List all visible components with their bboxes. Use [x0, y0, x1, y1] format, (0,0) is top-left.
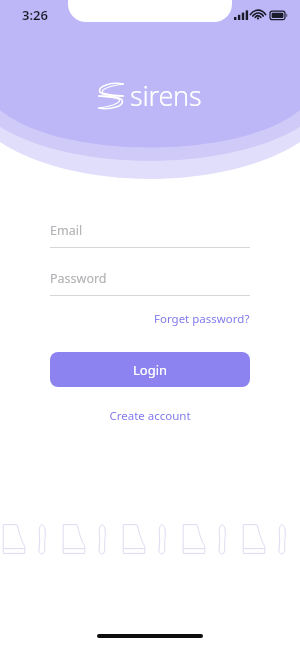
- button[interactable]: Create account: [103, 405, 197, 427]
- button[interactable]: Forget password?: [154, 308, 250, 330]
- staticText: 3:26: [22, 6, 48, 24]
- button[interactable]: Login: [50, 352, 250, 387]
- staticText: Create account: [109, 408, 191, 424]
- staticText: Password: [50, 270, 107, 287]
- staticText: Login: [133, 361, 168, 379]
- staticText: sirens: [130, 77, 202, 114]
- staticText: Forget password?: [154, 311, 250, 327]
- button[interactable]: Email: [50, 222, 250, 248]
- button[interactable]: Password: [50, 270, 250, 296]
- staticText: Email: [50, 222, 83, 239]
